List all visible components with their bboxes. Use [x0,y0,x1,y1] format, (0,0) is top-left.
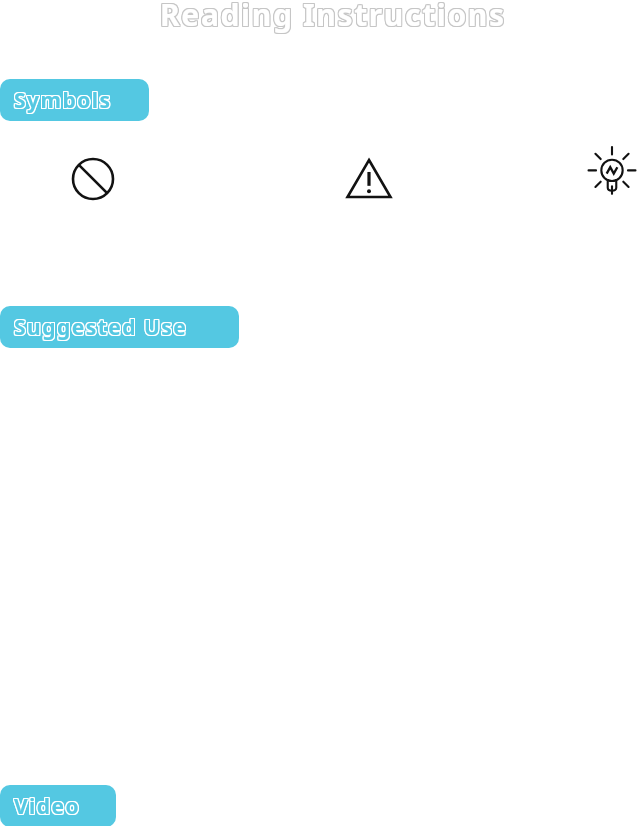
staticText: Symbols [15,85,113,114]
staticText: Video [14,792,81,821]
staticText: Symbols [15,86,113,115]
staticText: Video [15,792,82,821]
staticText: Suggested Use [13,314,187,343]
staticText: Video [14,791,81,820]
staticText: Video [15,791,82,820]
staticText: Symbols [13,87,111,116]
button[interactable]: Do not use [71,157,115,201]
staticText: Symbols [14,85,112,114]
button[interactable]: Symbols [0,79,149,121]
staticText: Video [15,793,82,822]
button[interactable]: Suggested Use [0,306,239,348]
staticText: Reading Instructions [161,0,507,36]
staticText: Reading Instructions [160,0,506,36]
staticText: Reading Instructions [161,0,507,34]
staticText: Suggested Use [13,312,187,341]
staticText: Suggested Use [14,312,188,341]
staticText: Reading Instructions [160,0,506,34]
staticText: Reading Instructions [161,0,507,35]
staticText: Reading Instructions [159,0,505,36]
staticText: Reading Instructions [160,0,506,35]
staticText: Symbols [14,87,112,116]
staticText: Reading Instructions [159,0,505,35]
staticText: Video [13,791,80,820]
staticText: Symbols [13,85,111,114]
staticText: Suggested Use [15,313,189,342]
staticText: Video [13,793,80,822]
staticText: Symbols [15,87,113,116]
button[interactable]: Video [0,785,116,826]
staticText: Symbols [13,86,111,115]
staticText: Reading Instructions [159,0,505,34]
staticText: Suggested Use [15,312,189,341]
staticText: Video [13,792,80,821]
staticText: Video [14,793,81,822]
staticText: Suggested Use [14,313,188,342]
staticText: Symbols [14,86,112,115]
button[interactable]: Tip [586,147,637,199]
staticText: Suggested Use [14,314,188,343]
button[interactable]: Warning [345,157,393,201]
staticText: Suggested Use [15,314,189,343]
staticText: Suggested Use [13,313,187,342]
